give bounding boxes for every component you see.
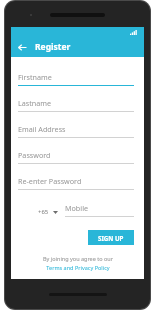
staticText: Register	[35, 41, 71, 53]
staticText: Email Address	[18, 124, 66, 134]
staticText: Lastname	[18, 98, 52, 108]
staticText: Re-enter Password	[18, 176, 82, 186]
staticText: Firstname	[18, 72, 52, 82]
staticText: SIGN UP	[98, 234, 124, 242]
button[interactable]: Re-enter Password	[18, 176, 134, 190]
button[interactable]: Terms and Privacy Policy	[46, 264, 110, 271]
button[interactable]: Email Address	[18, 124, 134, 138]
button[interactable]: Password	[18, 150, 134, 164]
button[interactable]: Lastname	[18, 98, 134, 112]
button[interactable]: Firstname	[18, 72, 134, 86]
staticText: Mobile	[65, 203, 89, 213]
button[interactable]: Mobile	[65, 203, 134, 217]
staticText: Terms and Privacy Policy	[46, 264, 110, 271]
button[interactable]: Back	[16, 41, 28, 53]
staticText: By joining you agree to our	[43, 255, 113, 262]
staticText: +65	[38, 208, 49, 216]
button[interactable]: SIGN UP	[88, 230, 134, 245]
button[interactable]: +65	[38, 208, 58, 217]
staticText: Password	[18, 150, 51, 160]
